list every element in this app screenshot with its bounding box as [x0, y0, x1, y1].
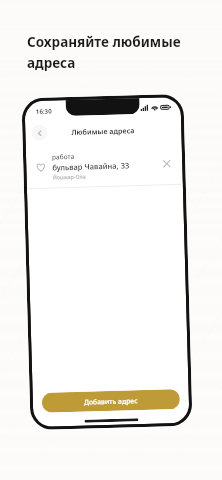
button[interactable]: Добавить адрес: [42, 389, 180, 413]
other: Избранное: [35, 162, 46, 173]
staticText: Добавить адрес: [84, 396, 138, 407]
staticText: 16:30: [36, 106, 52, 115]
button[interactable]: Назад: [31, 125, 47, 141]
staticText: работа: [52, 152, 75, 161]
staticText: бульвар Чавайна, 33: [52, 160, 129, 172]
button[interactable]: Удалить: [159, 156, 173, 170]
staticText: Любимые адреса: [71, 125, 135, 137]
staticText: Сохраняйте любимые адреса: [27, 33, 181, 72]
button[interactable]: Избранное: [26, 142, 183, 188]
staticText: Йошкар-Ола: [52, 172, 87, 180]
